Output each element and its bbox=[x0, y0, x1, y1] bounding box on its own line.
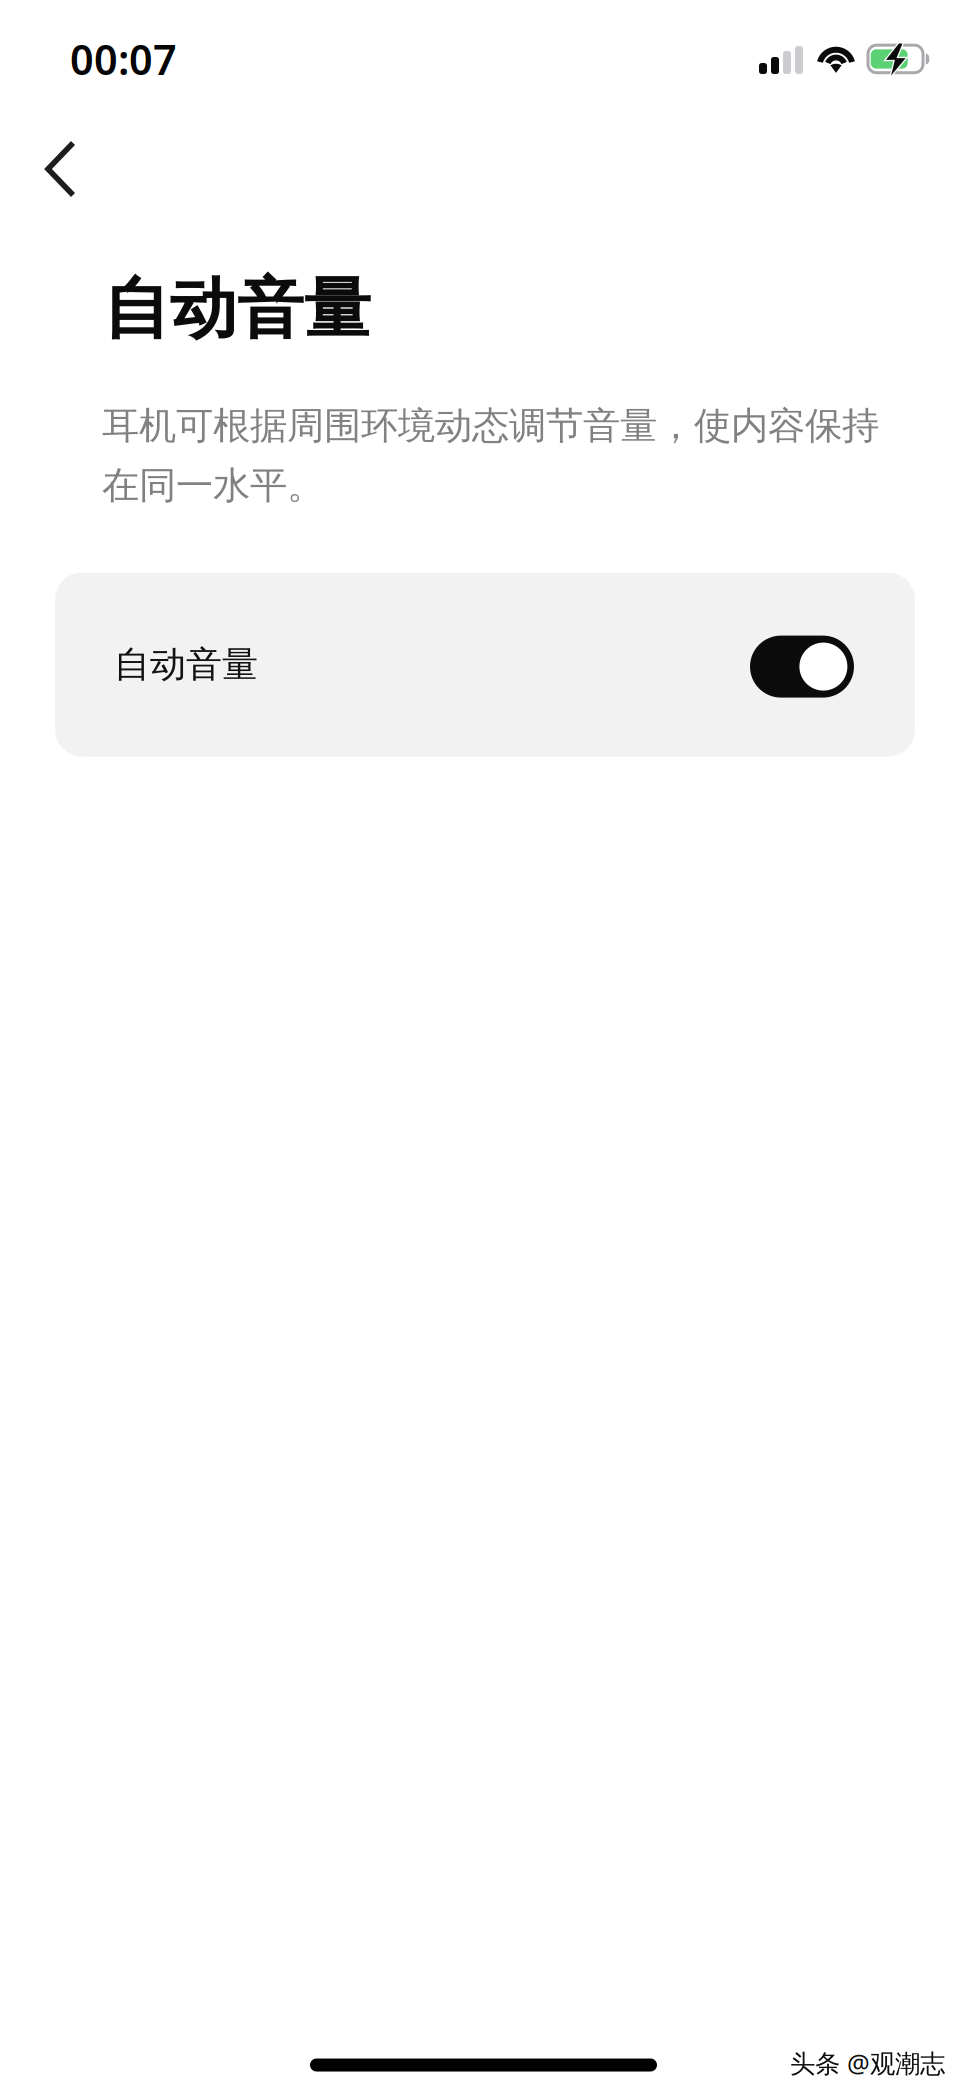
staticText: 自动音量 bbox=[114, 642, 258, 687]
staticText: 头条 @观潮志 bbox=[790, 2046, 945, 2080]
staticText: 耳机可根据周围环境动态调节音量，使内容保持在同一水平。 bbox=[102, 403, 879, 509]
staticText: 00:07 bbox=[70, 32, 177, 86]
button[interactable]: On bbox=[55, 573, 915, 757]
button[interactable]: Back bbox=[0, 118, 105, 222]
staticText: 自动音量 bbox=[103, 268, 371, 350]
